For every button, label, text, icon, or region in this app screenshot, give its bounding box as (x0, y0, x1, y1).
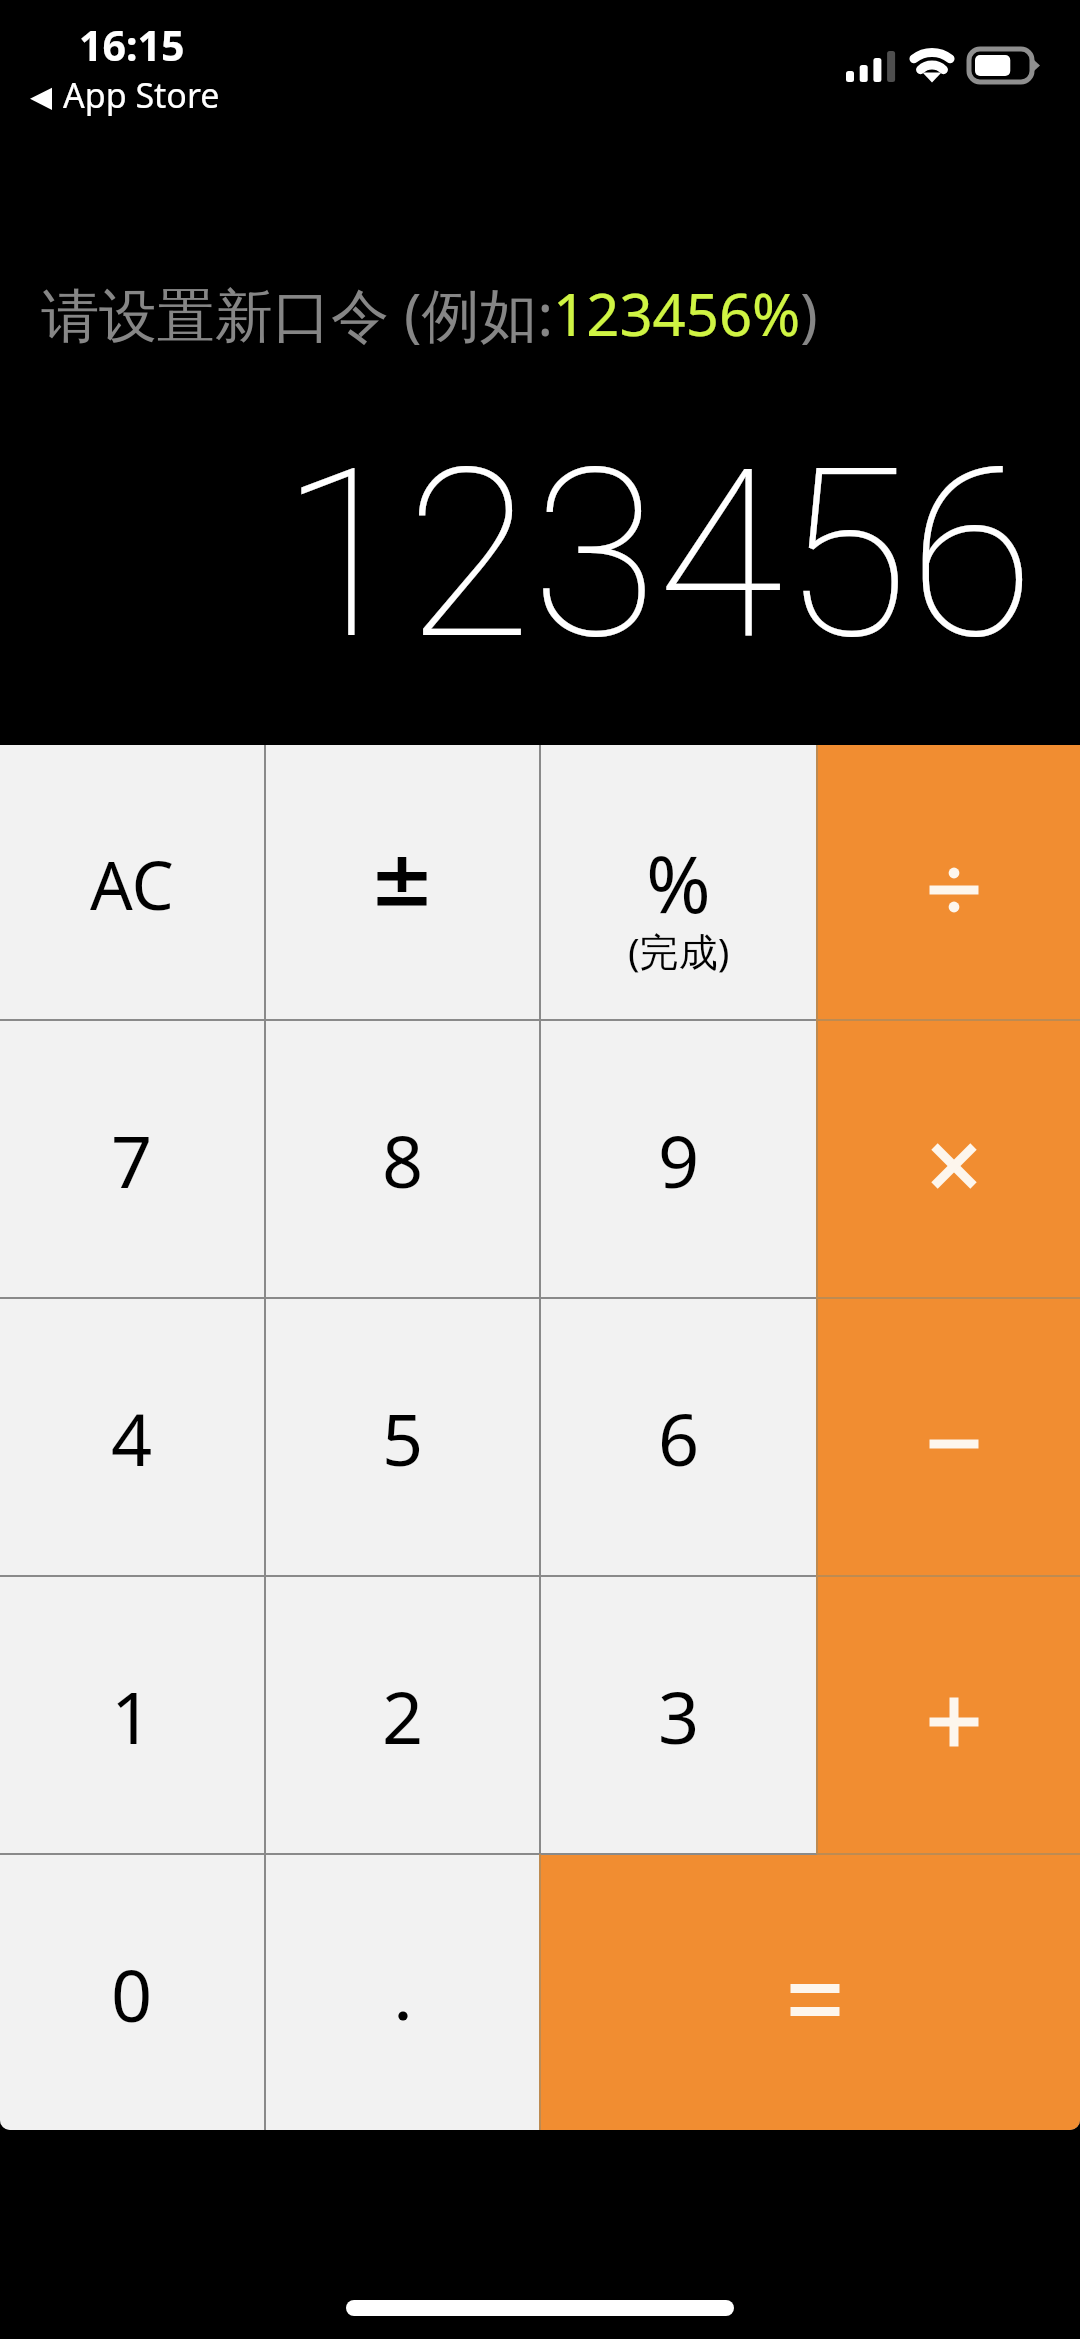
button[interactable]: 3 (541, 1577, 816, 1853)
staticText: 6 (658, 1389, 700, 1487)
staticText: 123456 (280, 419, 1035, 692)
staticText: 2 (382, 1667, 424, 1765)
staticText: 3 (658, 1667, 700, 1765)
button[interactable]: Add (817, 1576, 1080, 1854)
button[interactable]: 2 (266, 1577, 539, 1853)
staticText: (完成) (628, 924, 730, 977)
button[interactable]: 6 (541, 1299, 816, 1575)
button[interactable]: Toggle sign (266, 745, 539, 1019)
staticText: 请设置新口令 (例如:123456%) (41, 274, 818, 353)
button[interactable]: 5 (266, 1299, 539, 1575)
button[interactable]: 0 (0, 1855, 264, 2130)
staticText: 1 (111, 1667, 153, 1765)
button[interactable]: 7 (0, 1021, 264, 1297)
staticText: 8 (382, 1111, 424, 1209)
staticText: AC (90, 838, 174, 929)
staticText: 5 (382, 1389, 424, 1487)
staticText: 16:15 (79, 17, 185, 73)
staticText: 4 (111, 1389, 153, 1487)
staticText: App Store (63, 72, 220, 118)
staticText: 9 (658, 1111, 700, 1209)
button[interactable]: Decimal point (266, 1855, 540, 2130)
button[interactable]: Subtract (817, 1298, 1080, 1576)
staticText: 0 (111, 1945, 153, 2043)
button[interactable]: % (541, 745, 816, 1019)
button[interactable]: 4 (0, 1299, 264, 1575)
button[interactable]: 8 (266, 1021, 539, 1297)
button[interactable]: Multiply (817, 1020, 1080, 1298)
staticText: % (646, 830, 711, 936)
button[interactable]: AC (0, 745, 264, 1019)
button[interactable]: 1 (0, 1577, 264, 1853)
button[interactable]: Divide (817, 745, 1080, 1020)
button[interactable]: Back to App Store (30, 72, 220, 118)
button[interactable]: Equals (540, 1855, 1080, 2130)
staticText: 7 (111, 1111, 153, 1209)
button[interactable]: 9 (541, 1021, 816, 1297)
